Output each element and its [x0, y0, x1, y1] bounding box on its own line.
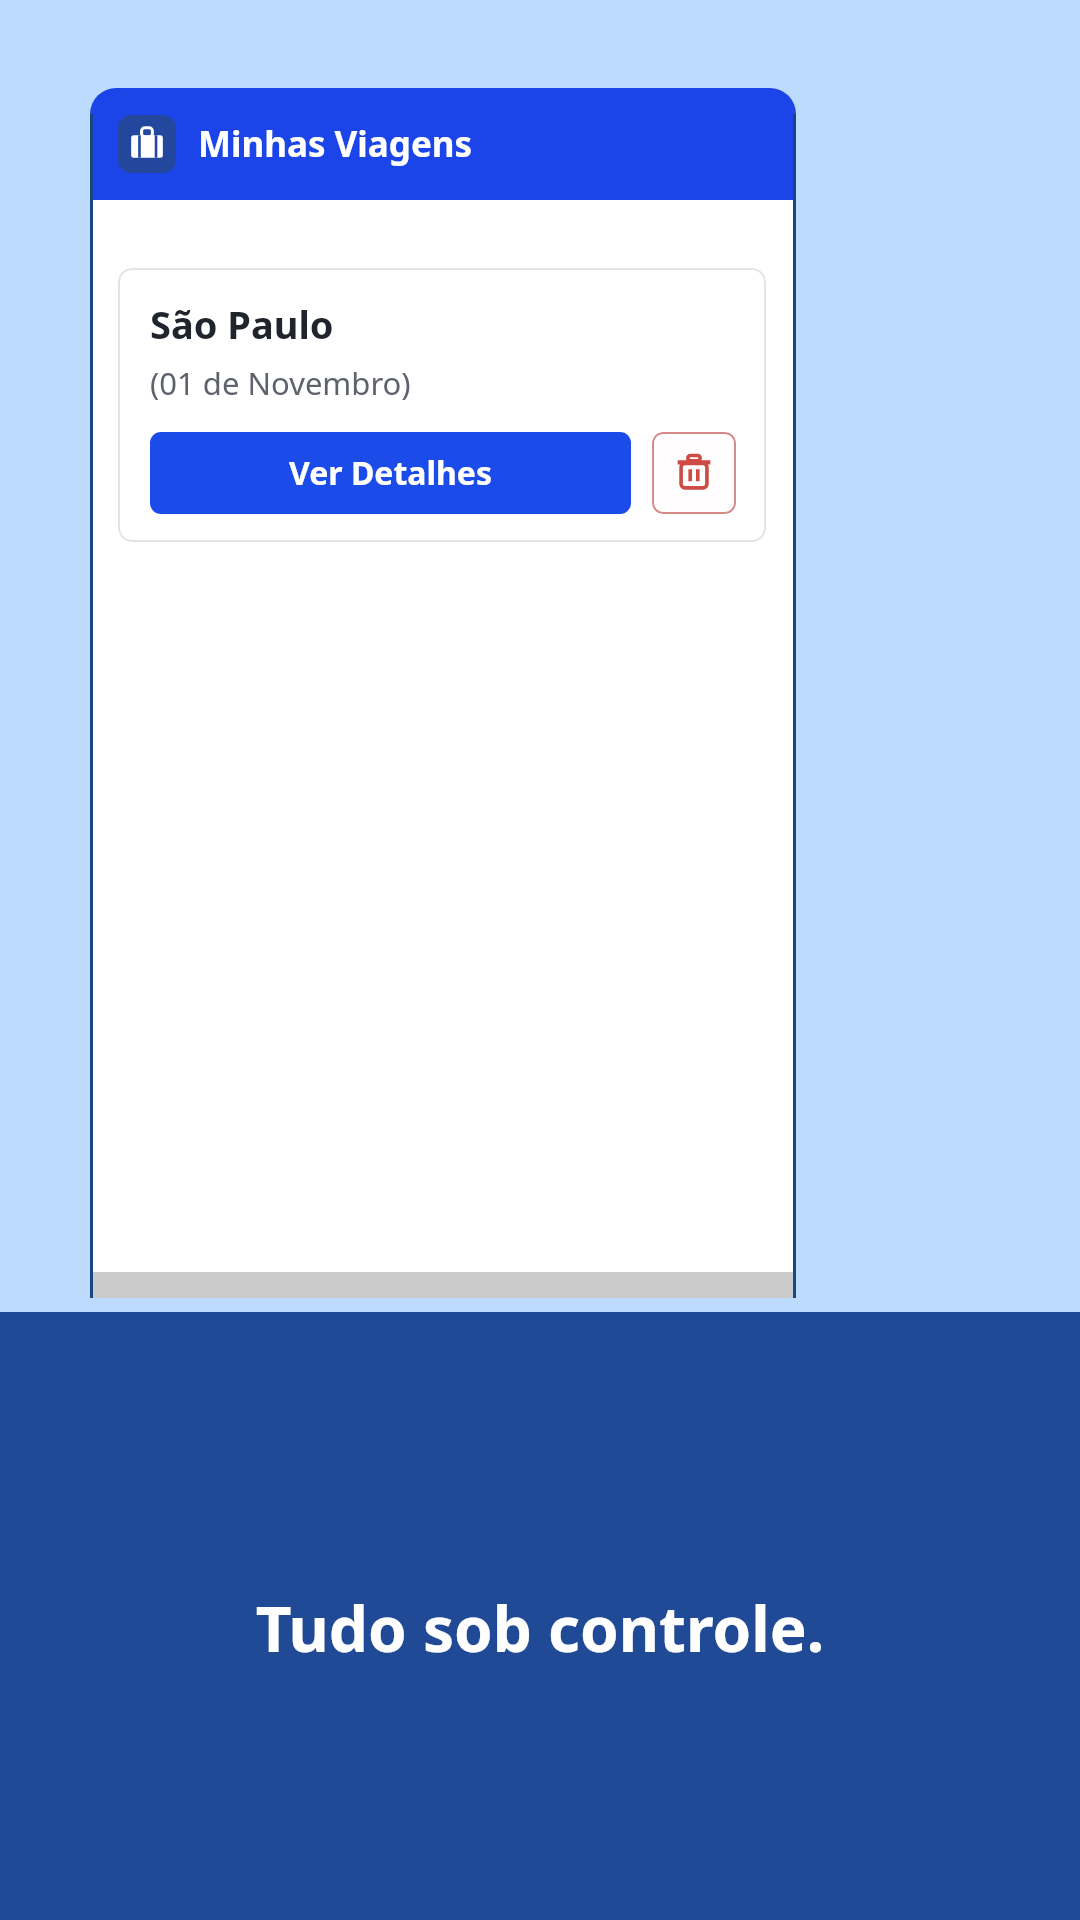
staticText: Minhas Viagens [198, 120, 473, 168]
button[interactable]: Excluir viagem [652, 432, 736, 514]
button[interactable]: São Paulo [118, 268, 766, 542]
staticText: São Paulo [150, 298, 334, 350]
staticText: Tudo sob controle. [0, 1586, 1080, 1670]
staticText: (01 de Novembro) [150, 362, 411, 404]
button[interactable]: Ver Detalhes [150, 432, 631, 514]
staticText: Ver Detalhes [289, 451, 492, 495]
button[interactable]: Viagens [118, 115, 176, 173]
